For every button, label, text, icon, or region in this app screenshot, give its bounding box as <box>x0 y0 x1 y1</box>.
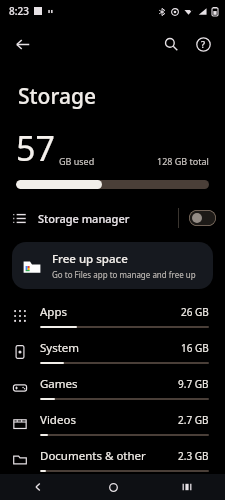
staticText: 47 MB <box>179 479 209 493</box>
button[interactable]: Search <box>157 30 185 58</box>
button[interactable]: Videos <box>0 406 225 442</box>
staticText: ? <box>201 38 206 50</box>
button[interactable]: Free up space <box>12 242 213 289</box>
button[interactable]: Storage manager <box>0 203 225 233</box>
staticText: Documents & other <box>40 448 178 464</box>
staticText: Videos <box>40 412 178 428</box>
button[interactable]: Documents & other <box>0 442 225 478</box>
staticText: 8:23 <box>9 4 29 18</box>
button[interactable]: Back <box>8 30 36 58</box>
staticText: 2.3 GB <box>178 449 209 463</box>
staticText: System <box>40 340 181 356</box>
button[interactable]: Home <box>101 475 125 499</box>
staticText: 26 GB <box>181 305 209 319</box>
staticText: 2.7 GB <box>178 413 209 427</box>
staticText: Free up space <box>52 251 128 267</box>
staticText: Storage manager <box>38 211 178 226</box>
staticText: Apps <box>40 304 181 320</box>
button[interactable]: Help <box>189 30 217 58</box>
button[interactable]: System <box>0 334 225 370</box>
button[interactable]: Images <box>0 478 225 500</box>
staticText: Images <box>40 478 179 494</box>
staticText: Storage <box>18 82 96 111</box>
button[interactable]: Games <box>0 370 225 406</box>
button[interactable]: Recents <box>175 475 199 499</box>
staticText: Games <box>40 376 178 392</box>
staticText: 16 GB <box>181 341 209 355</box>
staticText: 9.7 GB <box>178 377 209 391</box>
button[interactable]: Back <box>26 475 50 499</box>
staticText: 57 <box>16 125 55 171</box>
button[interactable]: Storage manager toggle <box>179 203 225 233</box>
staticText: Go to Files app to manage and free up sp… <box>52 269 203 280</box>
staticText: GB used <box>59 155 95 167</box>
button[interactable]: Apps <box>0 298 225 334</box>
staticText: 128 GB total <box>157 155 209 167</box>
